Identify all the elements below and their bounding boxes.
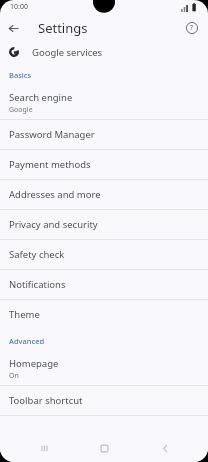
button[interactable]: Payment methods	[0, 150, 208, 180]
staticText: Toolbar shortcut	[9, 394, 83, 407]
button[interactable]: Privacy and security	[0, 210, 208, 240]
staticText: Basics	[9, 70, 32, 80]
staticText: Homepage	[9, 357, 59, 370]
staticText: Google services	[32, 46, 103, 59]
staticText: ?	[190, 23, 194, 33]
staticText: Safety check	[9, 248, 65, 261]
staticText: Privacy and security	[9, 218, 98, 231]
button[interactable]: Recent apps	[27, 434, 61, 462]
button[interactable]: Addresses and more	[0, 180, 208, 210]
button[interactable]: Theme	[0, 300, 208, 329]
button[interactable]: Back	[0, 15, 26, 41]
staticText: Theme	[9, 308, 40, 321]
staticText: Settings	[38, 19, 88, 37]
staticText: On	[9, 371, 19, 381]
button[interactable]: Home	[87, 434, 121, 462]
staticText: Addresses and more	[9, 188, 101, 201]
button[interactable]: Notifications	[0, 270, 208, 300]
button[interactable]: Search engine	[0, 87, 208, 120]
staticText: Search engine	[9, 91, 73, 104]
button[interactable]: Google services	[0, 42, 208, 62]
staticText: Password Manager	[9, 128, 95, 141]
button[interactable]: Homepage	[0, 353, 208, 386]
button[interactable]: Password Manager	[0, 120, 208, 150]
button[interactable]: Back	[148, 434, 182, 462]
staticText: Advanced	[9, 336, 45, 346]
button[interactable]: Safety check	[0, 240, 208, 270]
staticText: Payment methods	[9, 158, 91, 171]
button[interactable]: Toolbar shortcut	[0, 386, 208, 416]
staticText: 10:00	[10, 2, 28, 12]
staticText: Google	[9, 105, 33, 115]
staticText: Notifications	[9, 278, 66, 291]
button[interactable]: Help	[180, 16, 204, 40]
